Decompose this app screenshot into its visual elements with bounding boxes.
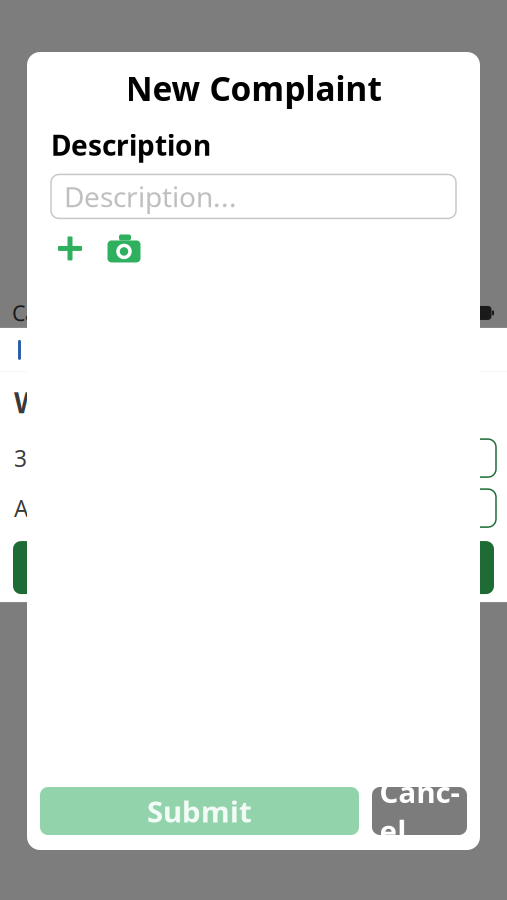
- button[interactable]: Submit: [40, 787, 359, 835]
- staticText: 3: [14, 443, 27, 473]
- button[interactable]: Add attachment: [55, 233, 85, 263]
- staticText: Cancel: [379, 772, 459, 850]
- staticText: A: [14, 493, 28, 523]
- button[interactable]: Take photo: [107, 233, 141, 263]
- staticText: Description...: [64, 178, 237, 215]
- staticText: Carrier: [12, 299, 82, 327]
- staticText: W: [14, 384, 41, 421]
- button[interactable]: Back to EMP: [0, 332, 84, 368]
- staticText: New Complaint: [125, 66, 381, 110]
- staticText: Submit: [147, 791, 252, 830]
- staticText: Description: [51, 126, 211, 163]
- button[interactable]: Cancel: [372, 787, 467, 835]
